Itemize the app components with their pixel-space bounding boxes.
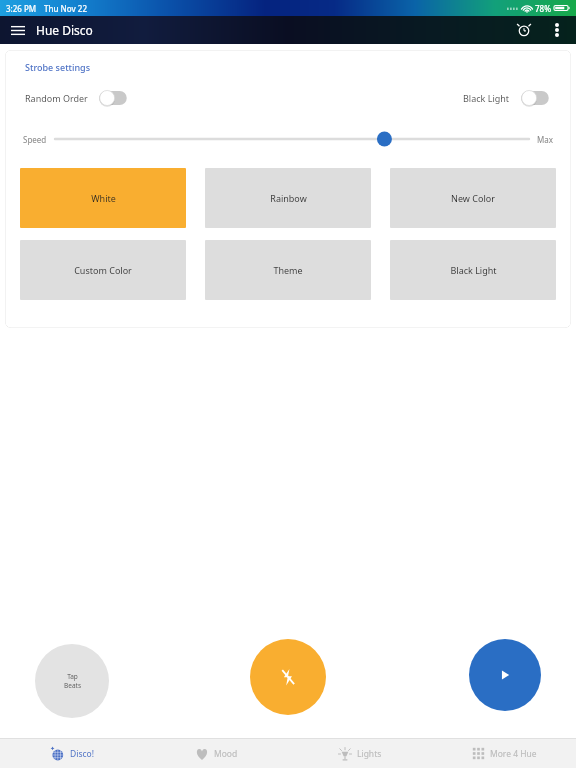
button[interactable]: White [20, 168, 186, 228]
staticText: More 4 Hue [490, 748, 537, 760]
staticText: Thu Nov 22 [44, 3, 87, 14]
staticText: Tap [67, 672, 78, 681]
button[interactable]: Play [469, 639, 541, 711]
staticText: Lights [357, 748, 382, 760]
button[interactable]: Lights [288, 739, 432, 768]
staticText: 78% [535, 3, 551, 14]
staticText: Theme [273, 264, 303, 276]
staticText: 3:26 PM [6, 3, 37, 14]
button[interactable]: Alarm [506, 16, 542, 44]
staticText: Strobe settings [25, 61, 91, 73]
button[interactable]: Black Light [463, 89, 551, 107]
button[interactable]: Open navigation drawer [0, 16, 36, 44]
staticText: Black Light [450, 264, 497, 276]
button[interactable]: Flash off [250, 639, 326, 715]
staticText: Black Light [463, 92, 510, 104]
button[interactable]: More options [542, 16, 572, 44]
button[interactable]: Disco! [0, 739, 144, 768]
button[interactable]: Tap [35, 644, 109, 718]
button[interactable]: New Color [390, 168, 556, 228]
button[interactable]: Mood [144, 739, 288, 768]
button[interactable]: Rainbow [205, 168, 371, 228]
button[interactable]: Theme [205, 240, 371, 300]
button[interactable]: Custom Color [20, 240, 186, 300]
button[interactable]: Black Light [390, 240, 556, 300]
staticText: Speed [23, 134, 47, 145]
staticText: Hue Disco [36, 22, 93, 38]
staticText: Beats [64, 681, 81, 690]
staticText: New Color [451, 192, 495, 204]
staticText: Custom Color [74, 264, 132, 276]
staticText: Disco! [70, 748, 94, 760]
button[interactable]: More 4 Hue [432, 739, 576, 768]
staticText: Max [537, 134, 553, 145]
staticText: Random Order [25, 92, 88, 104]
staticText: White [91, 192, 116, 204]
button[interactable] [55, 129, 529, 149]
staticText: Rainbow [270, 192, 307, 204]
button[interactable]: Random Order [25, 89, 129, 107]
staticText: Mood [214, 748, 238, 760]
